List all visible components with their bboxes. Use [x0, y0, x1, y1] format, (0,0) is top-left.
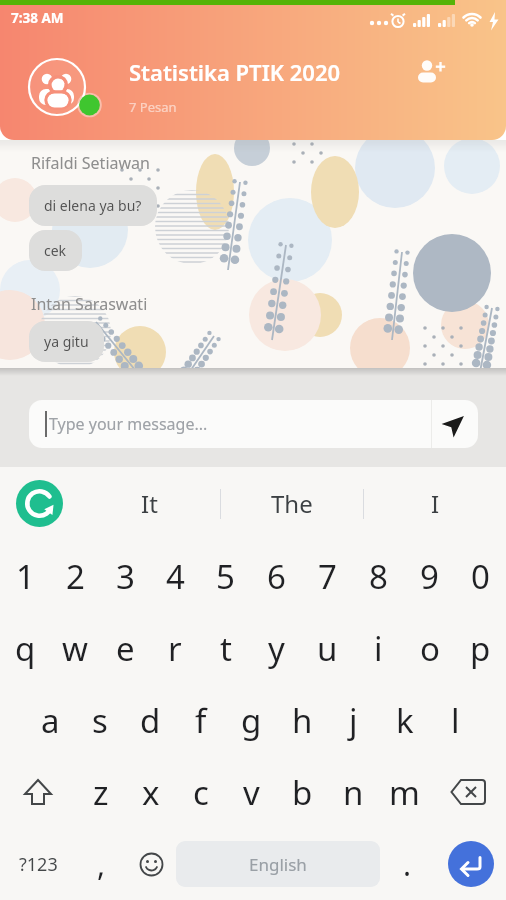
button[interactable]: d: [125, 684, 175, 756]
staticText: Rifaldi Setiawan: [31, 152, 150, 174]
staticText: di elena ya bu?: [44, 196, 142, 215]
button[interactable]: 0: [455, 540, 506, 612]
staticText: b: [292, 770, 313, 815]
staticText: 0: [471, 554, 490, 599]
staticText: z: [93, 770, 109, 815]
button[interactable]: di elena ya bu?: [29, 185, 157, 226]
staticText: q: [15, 626, 36, 671]
staticText: 7 Pesan: [129, 98, 177, 116]
staticText: l: [451, 698, 460, 743]
button[interactable]: [127, 828, 176, 900]
staticText: k: [396, 698, 414, 743]
staticText: w: [62, 626, 88, 671]
button[interactable]: 5: [200, 540, 251, 612]
staticText: e: [116, 626, 135, 671]
button[interactable]: b: [277, 756, 328, 828]
staticText: 6: [267, 554, 286, 599]
staticText: The: [271, 487, 313, 520]
button[interactable]: 7: [302, 540, 353, 612]
button[interactable]: x: [126, 756, 176, 828]
button[interactable]: It: [79, 467, 220, 540]
staticText: d: [140, 698, 161, 743]
staticText: n: [343, 770, 364, 815]
button[interactable]: v: [226, 756, 277, 828]
staticText: s: [92, 698, 108, 743]
button[interactable]: 6: [251, 540, 302, 612]
staticText: Type your message...: [49, 413, 208, 435]
button[interactable]: Type your message...: [29, 400, 478, 448]
staticText: y: [268, 626, 285, 671]
button[interactable]: .: [380, 828, 435, 900]
staticText: I: [431, 487, 440, 520]
button[interactable]: n: [328, 756, 379, 828]
button[interactable]: [0, 756, 76, 828]
button[interactable]: cek: [29, 230, 82, 271]
button[interactable]: i: [353, 612, 404, 684]
button[interactable]: c: [176, 756, 226, 828]
staticText: h: [292, 698, 313, 743]
staticText: m: [389, 770, 420, 815]
button[interactable]: [432, 400, 478, 448]
button[interactable]: ya gitu: [29, 321, 104, 362]
button[interactable]: f: [175, 684, 226, 756]
button[interactable]: p: [455, 612, 506, 684]
staticText: g: [241, 698, 262, 743]
staticText: 7:38 AM: [11, 9, 64, 27]
button[interactable]: [0, 467, 79, 540]
staticText: c: [193, 770, 209, 815]
staticText: p: [470, 626, 491, 671]
staticText: 4: [166, 554, 185, 599]
button[interactable]: [430, 756, 506, 828]
staticText: f: [195, 698, 207, 743]
button[interactable]: s: [75, 684, 125, 756]
button[interactable]: I: [364, 467, 506, 540]
button[interactable]: ,: [76, 828, 127, 900]
staticText: ?123: [19, 852, 58, 877]
button[interactable]: 4: [150, 540, 200, 612]
staticText: 7: [318, 554, 337, 599]
staticText: English: [249, 853, 307, 876]
button[interactable]: English: [176, 841, 380, 887]
button[interactable]: h: [277, 684, 328, 756]
staticText: Statistika PTIK 2020: [129, 57, 341, 87]
button[interactable]: u: [302, 612, 353, 684]
button[interactable]: a: [25, 684, 75, 756]
button[interactable]: 8: [353, 540, 404, 612]
staticText: 1: [16, 554, 35, 599]
button[interactable]: r: [150, 612, 200, 684]
button[interactable]: [26, 53, 90, 117]
staticText: o: [420, 626, 440, 671]
button[interactable]: 3: [100, 540, 150, 612]
button[interactable]: 1: [0, 540, 50, 612]
staticText: 8: [369, 554, 388, 599]
staticText: x: [142, 770, 160, 815]
button[interactable]: [410, 52, 450, 92]
staticText: .: [403, 844, 412, 885]
button[interactable]: 9: [404, 540, 455, 612]
button[interactable]: l: [430, 684, 481, 756]
button[interactable]: z: [76, 756, 126, 828]
button[interactable]: [435, 828, 506, 900]
staticText: v: [243, 770, 260, 815]
button[interactable]: The: [221, 467, 363, 540]
button[interactable]: w: [50, 612, 100, 684]
button[interactable]: o: [404, 612, 455, 684]
staticText: 9: [420, 554, 439, 599]
button[interactable]: 2: [50, 540, 100, 612]
button[interactable]: m: [379, 756, 430, 828]
button[interactable]: ?123: [0, 828, 76, 900]
staticText: r: [168, 626, 182, 671]
button[interactable]: e: [100, 612, 150, 684]
button[interactable]: t: [200, 612, 251, 684]
staticText: ,: [97, 844, 106, 885]
button[interactable]: q: [0, 612, 50, 684]
button[interactable]: y: [251, 612, 302, 684]
staticText: 3: [116, 554, 135, 599]
button[interactable]: g: [226, 684, 277, 756]
button[interactable]: j: [328, 684, 379, 756]
button[interactable]: k: [379, 684, 430, 756]
staticText: cek: [44, 241, 67, 260]
staticText: It: [141, 487, 158, 520]
staticText: a: [41, 698, 60, 743]
staticText: i: [374, 626, 383, 671]
